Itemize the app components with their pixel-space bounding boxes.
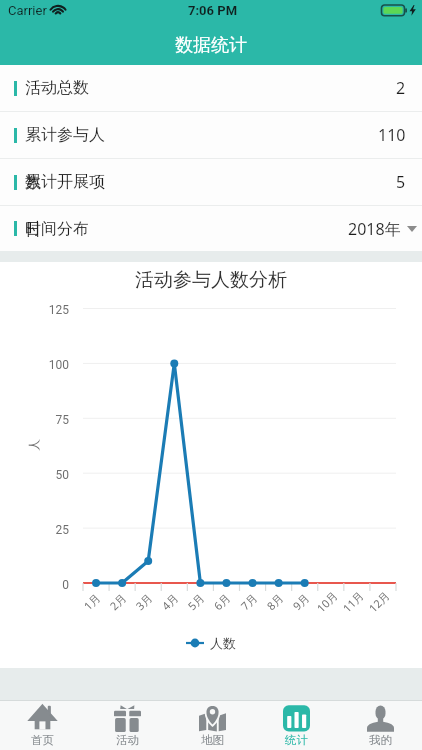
staticText: 7:06 PM — [188, 3, 238, 18]
button[interactable]: 时间分布 — [0, 206, 422, 251]
staticText: Carrier — [8, 3, 47, 18]
staticText: 地图 — [201, 733, 224, 747]
staticText: 我的 — [369, 733, 392, 747]
button[interactable]: 活动 — [85, 701, 170, 750]
staticText: 5 — [396, 171, 406, 193]
staticText: 活动总数 — [25, 78, 89, 98]
button[interactable]: 地图 — [170, 701, 254, 750]
staticText: 时间分布 — [25, 219, 89, 239]
staticText: 8月 — [263, 590, 287, 613]
staticText: 2 — [396, 77, 406, 99]
button[interactable]: 首页 — [0, 701, 85, 750]
staticText: 12月 — [365, 588, 393, 615]
button[interactable]: 活动总数 — [0, 65, 422, 111]
staticText: 125 — [48, 303, 69, 317]
staticText: 11月 — [339, 588, 367, 615]
staticText: 活动 — [116, 733, 139, 747]
button[interactable]: 统计 — [254, 701, 338, 750]
staticText: 2018年 — [348, 218, 401, 240]
staticText: 累计开展项 — [25, 172, 105, 192]
staticText: 6月 — [210, 590, 234, 613]
staticText: 人数 — [210, 635, 236, 651]
staticText: 0 — [62, 578, 69, 592]
staticText: 5月 — [184, 590, 208, 613]
staticText: 日 — [25, 220, 41, 240]
staticText: 110 — [378, 124, 406, 146]
staticText: 统计 — [285, 733, 308, 747]
staticText: 4月 — [158, 590, 182, 613]
staticText: 数据统计 — [175, 34, 247, 57]
staticText: 人 — [25, 438, 39, 451]
staticText: 25 — [55, 523, 69, 537]
staticText: 累计参与人 — [25, 125, 105, 145]
staticText: 活动参与人数分析 — [135, 268, 287, 292]
staticText: 100 — [48, 358, 69, 372]
staticText: 75 — [55, 413, 69, 427]
staticText: 首页 — [31, 733, 54, 747]
staticText: 50 — [55, 468, 69, 482]
staticText: 3月 — [132, 590, 156, 613]
button[interactable]: 我的 — [338, 701, 422, 750]
staticText: 2月 — [106, 590, 130, 613]
staticText: 10月 — [313, 588, 341, 615]
button[interactable]: 累计参与人 — [0, 112, 422, 158]
button[interactable]: 累计开展项 — [0, 159, 422, 205]
staticText: 9月 — [289, 590, 313, 613]
staticText: 数 — [25, 173, 41, 193]
staticText: 7月 — [237, 590, 261, 613]
staticText: 1月 — [80, 590, 104, 613]
